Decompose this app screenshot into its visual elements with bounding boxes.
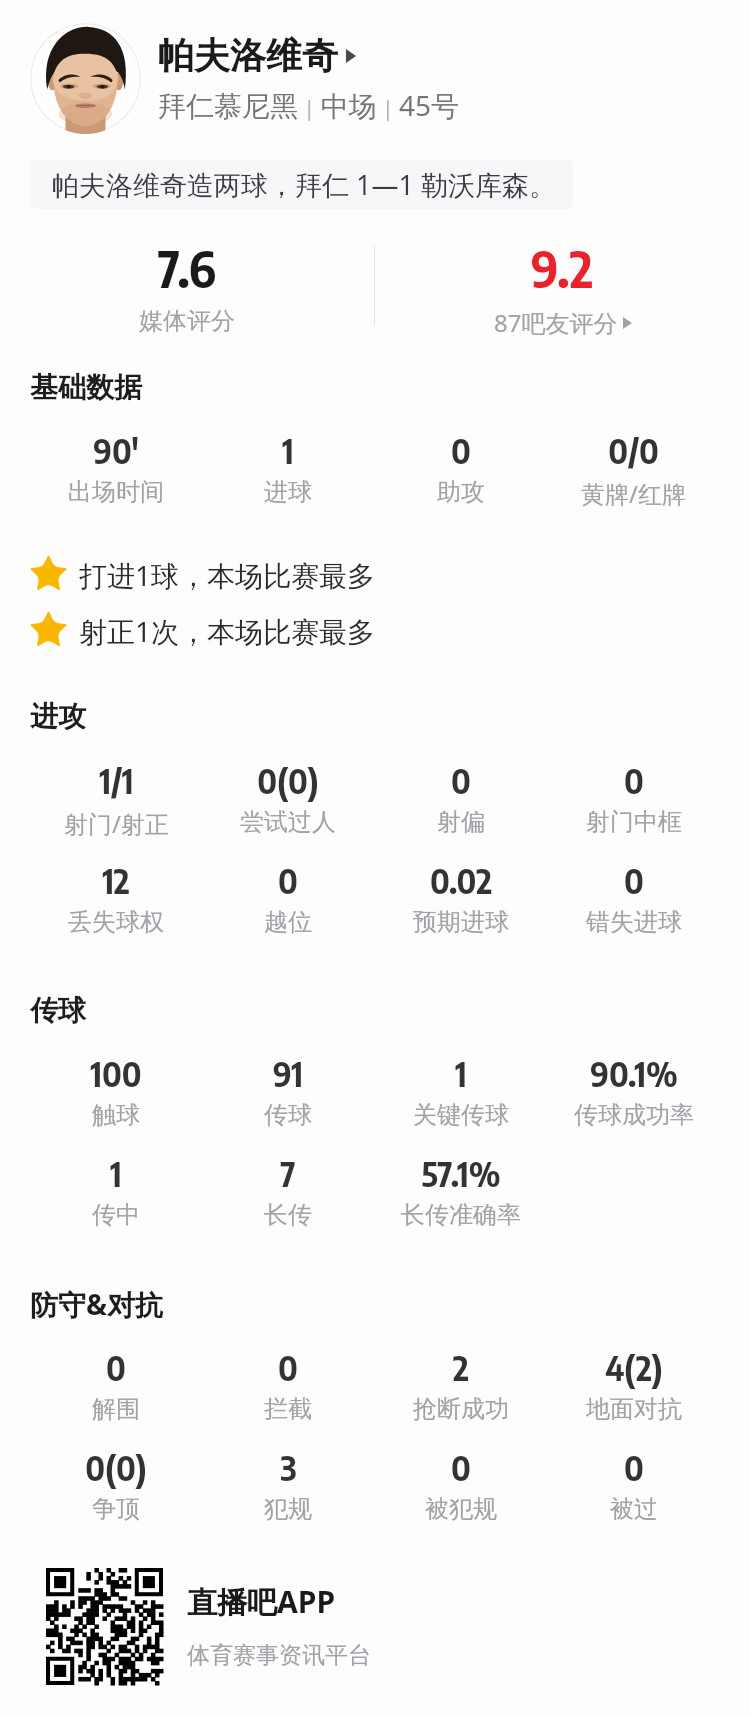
staticText: 射门中框 <box>586 807 682 837</box>
staticText: 关键传球 <box>413 1100 509 1130</box>
staticText: 1 <box>110 1152 122 1195</box>
staticText: 拜仁慕尼黑 | 中场 | 45号 <box>158 86 460 124</box>
staticText: 90' <box>93 429 139 472</box>
staticText: 0 <box>624 759 644 802</box>
staticText: 1 <box>455 1052 467 1095</box>
staticText: 87吧友评分 <box>494 306 618 339</box>
staticText: 1/1 <box>99 759 134 802</box>
staticText: 12 <box>102 859 130 902</box>
button[interactable]: 射正1次，本场比赛最多 <box>28 610 750 651</box>
staticText: 0 <box>106 1346 126 1389</box>
staticText: 射偏 <box>437 807 485 837</box>
staticText: 拦截 <box>264 1394 312 1424</box>
staticText: 助攻 <box>437 477 485 507</box>
staticText: 1 <box>282 429 294 472</box>
staticText: 0 <box>451 429 471 472</box>
staticText: 7 <box>280 1152 296 1195</box>
staticText: 3 <box>280 1446 297 1489</box>
button[interactable]: 帕夫洛维奇造两球，拜仁 1—1 勒沃库森。 <box>30 160 573 209</box>
staticText: 0 <box>624 859 644 902</box>
staticText: 90.1% <box>590 1052 678 1095</box>
staticText: 0 <box>278 859 298 902</box>
staticText: 0(0) <box>85 1446 147 1489</box>
staticText: 越位 <box>264 907 312 937</box>
staticText: 体育赛事资讯平台 <box>187 1641 371 1670</box>
staticText: 57.1% <box>421 1152 501 1195</box>
staticText: 被过 <box>610 1494 658 1524</box>
staticText: 9.2 <box>531 236 594 299</box>
staticText: 2 <box>453 1346 469 1389</box>
staticText: 0/0 <box>608 429 659 472</box>
staticText: 丢失球权 <box>68 907 164 937</box>
staticText: 进攻 <box>30 699 86 734</box>
button[interactable]: 直播吧APP <box>46 1568 750 1685</box>
staticText: 传中 <box>92 1200 140 1230</box>
staticText: 射门/射正 <box>64 807 169 840</box>
staticText: 触球 <box>92 1100 140 1130</box>
staticText: 100 <box>90 1052 142 1095</box>
staticText: 7.6 <box>158 236 216 299</box>
staticText: 错失进球 <box>586 907 682 937</box>
staticText: 长传准确率 <box>401 1200 521 1230</box>
staticText: 直播吧APP <box>187 1581 336 1622</box>
staticText: 预期进球 <box>413 907 509 937</box>
staticText: 91 <box>273 1052 303 1095</box>
staticText: 黄牌/红牌 <box>581 477 686 510</box>
button[interactable]: 打进1球，本场比赛最多 <box>28 554 750 595</box>
staticText: 地面对抗 <box>586 1394 682 1424</box>
staticText: 犯规 <box>264 1494 312 1524</box>
button[interactable]: 帕夫洛维奇 <box>158 33 356 78</box>
staticText: 打进1球，本场比赛最多 <box>79 556 376 594</box>
staticText: 抢断成功 <box>413 1394 509 1424</box>
staticText: 0 <box>624 1446 644 1489</box>
staticText: 解围 <box>92 1394 140 1424</box>
button[interactable]: 87吧友评分 <box>494 306 632 339</box>
staticText: 帕夫洛维奇 <box>158 33 338 78</box>
staticText: 出场时间 <box>68 477 164 507</box>
staticText: 进球 <box>264 477 312 507</box>
staticText: 媒体评分 <box>139 306 235 336</box>
staticText: 射正1次，本场比赛最多 <box>79 612 376 650</box>
staticText: 0 <box>278 1346 298 1389</box>
staticText: 0(0) <box>257 759 319 802</box>
staticText: 防守&对抗 <box>30 1285 164 1323</box>
staticText: 传球成功率 <box>574 1100 694 1130</box>
staticText: 被犯规 <box>425 1494 497 1524</box>
staticText: 基础数据 <box>30 370 142 405</box>
staticText: 0 <box>451 1446 471 1489</box>
staticText: 帕夫洛维奇造两球，拜仁 1—1 勒沃库森。 <box>52 166 556 203</box>
staticText: 长传 <box>264 1200 312 1230</box>
staticText: 4(2) <box>605 1346 663 1389</box>
staticText: 尝试过人 <box>240 807 336 837</box>
staticText: 传球 <box>30 993 86 1028</box>
staticText: 0.02 <box>430 859 492 902</box>
staticText: 0 <box>451 759 471 802</box>
staticText: 传球 <box>264 1100 312 1130</box>
staticText: 争顶 <box>92 1494 140 1524</box>
